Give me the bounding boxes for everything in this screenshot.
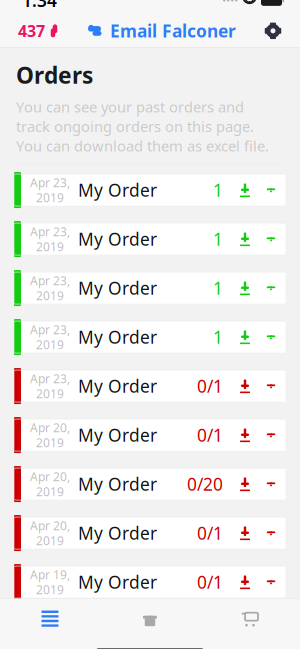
staticText: Apr 23, — [30, 224, 70, 239]
staticText: My Order — [78, 473, 157, 496]
staticText: 1 — [213, 179, 223, 202]
staticText: Apr 23, — [30, 175, 70, 190]
button[interactable]: Apr 23, — [14, 321, 286, 353]
staticText: 1 — [213, 326, 223, 349]
staticText: 2019 — [36, 239, 64, 254]
button[interactable]: Apr 23, — [14, 174, 286, 206]
button[interactable]: Apr 19, — [14, 566, 286, 598]
staticText: 0/1 — [197, 522, 223, 545]
staticText: My Order — [78, 179, 157, 202]
staticText: Orders — [16, 60, 93, 90]
staticText: 2019 — [36, 533, 64, 548]
staticText: 1 — [213, 277, 223, 300]
button[interactable]: Settings — [260, 16, 286, 46]
button[interactable]: Apr 20, — [14, 419, 286, 451]
staticText: 2019 — [36, 582, 64, 597]
button[interactable]: Menu — [0, 600, 100, 638]
staticText: My Order — [78, 326, 157, 349]
staticText: My Order — [78, 375, 157, 398]
button[interactable]: 437 credits — [14, 14, 63, 47]
staticText: Apr 23, — [30, 371, 70, 386]
staticText: My Order — [78, 228, 157, 251]
staticText: 2019 — [36, 484, 64, 499]
staticText: Apr 20, — [30, 420, 70, 435]
staticText: 0/1 — [197, 424, 223, 447]
staticText: 1 — [213, 228, 223, 251]
staticText: My Order — [78, 424, 157, 447]
staticText: My Order — [78, 522, 157, 545]
button[interactable]: Apr 23, — [14, 223, 286, 255]
staticText: Apr 23, — [30, 273, 70, 288]
staticText: You can see your past orders and track o… — [16, 97, 269, 155]
staticText: 437 — [18, 20, 45, 41]
staticText: Apr 19, — [30, 567, 70, 582]
button[interactable]: Apr 20, — [14, 517, 286, 549]
staticText: My Order — [78, 277, 157, 300]
staticText: 0/1 — [197, 571, 223, 594]
button[interactable]: Apr 20, — [14, 468, 286, 500]
staticText: 2019 — [36, 288, 64, 303]
button[interactable]: Email Falconer — [87, 13, 236, 48]
button[interactable]: Cart — [200, 600, 300, 637]
staticText: 2019 — [36, 435, 64, 450]
button[interactable]: Apr 23, — [14, 370, 286, 402]
staticText: Apr 20, — [30, 518, 70, 533]
staticText: 2019 — [36, 337, 64, 352]
button[interactable]: Home — [100, 601, 200, 637]
staticText: 1:34 — [22, 0, 57, 12]
staticText: My Order — [78, 571, 157, 594]
staticText: 2019 — [36, 386, 64, 401]
staticText: Email Falconer — [110, 19, 236, 42]
staticText: Apr 23, — [30, 322, 70, 337]
staticText: 0/20 — [187, 473, 223, 496]
button[interactable]: Apr 23, — [14, 272, 286, 304]
staticText: 0/1 — [197, 375, 223, 398]
staticText: 2019 — [36, 190, 64, 205]
staticText: Apr 20, — [30, 469, 70, 484]
